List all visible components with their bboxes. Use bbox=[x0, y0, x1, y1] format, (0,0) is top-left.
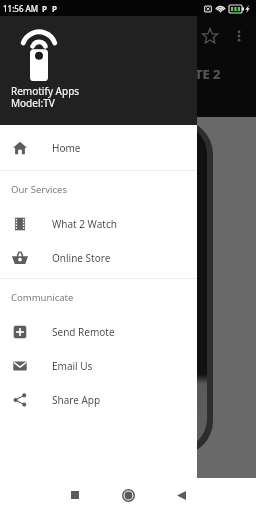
staticText: Online Store bbox=[52, 251, 111, 265]
staticText: Send Remote bbox=[52, 325, 115, 339]
staticText: Share App bbox=[52, 393, 101, 407]
staticText: Communicate bbox=[11, 291, 74, 304]
staticText: What 2 Watch bbox=[52, 217, 117, 231]
button[interactable]: Online Store bbox=[0, 241, 197, 275]
button[interactable]: Home bbox=[0, 125, 197, 170]
staticText: Remotify Apps bbox=[11, 84, 80, 98]
staticText: P bbox=[52, 3, 57, 14]
staticText: REMOTE 2 bbox=[157, 65, 221, 83]
button[interactable]: Email Us bbox=[0, 349, 197, 383]
staticText: Our Services bbox=[11, 183, 67, 196]
staticText: Model:TV bbox=[11, 96, 55, 110]
button[interactable]: Favourite bbox=[196, 22, 224, 50]
staticText: 11:56 AM bbox=[3, 3, 39, 14]
button[interactable]: Recents bbox=[58, 478, 92, 512]
staticText: Email Us bbox=[52, 359, 93, 373]
button[interactable]: What 2 Watch bbox=[0, 207, 197, 241]
button[interactable]: Home bbox=[111, 478, 145, 512]
button[interactable]: Share App bbox=[0, 383, 197, 417]
staticText: P bbox=[42, 3, 47, 14]
button[interactable]: Back bbox=[164, 478, 198, 512]
button[interactable]: More options bbox=[225, 22, 253, 50]
staticText: Home bbox=[52, 141, 81, 155]
button[interactable]: Send Remote bbox=[0, 315, 197, 349]
